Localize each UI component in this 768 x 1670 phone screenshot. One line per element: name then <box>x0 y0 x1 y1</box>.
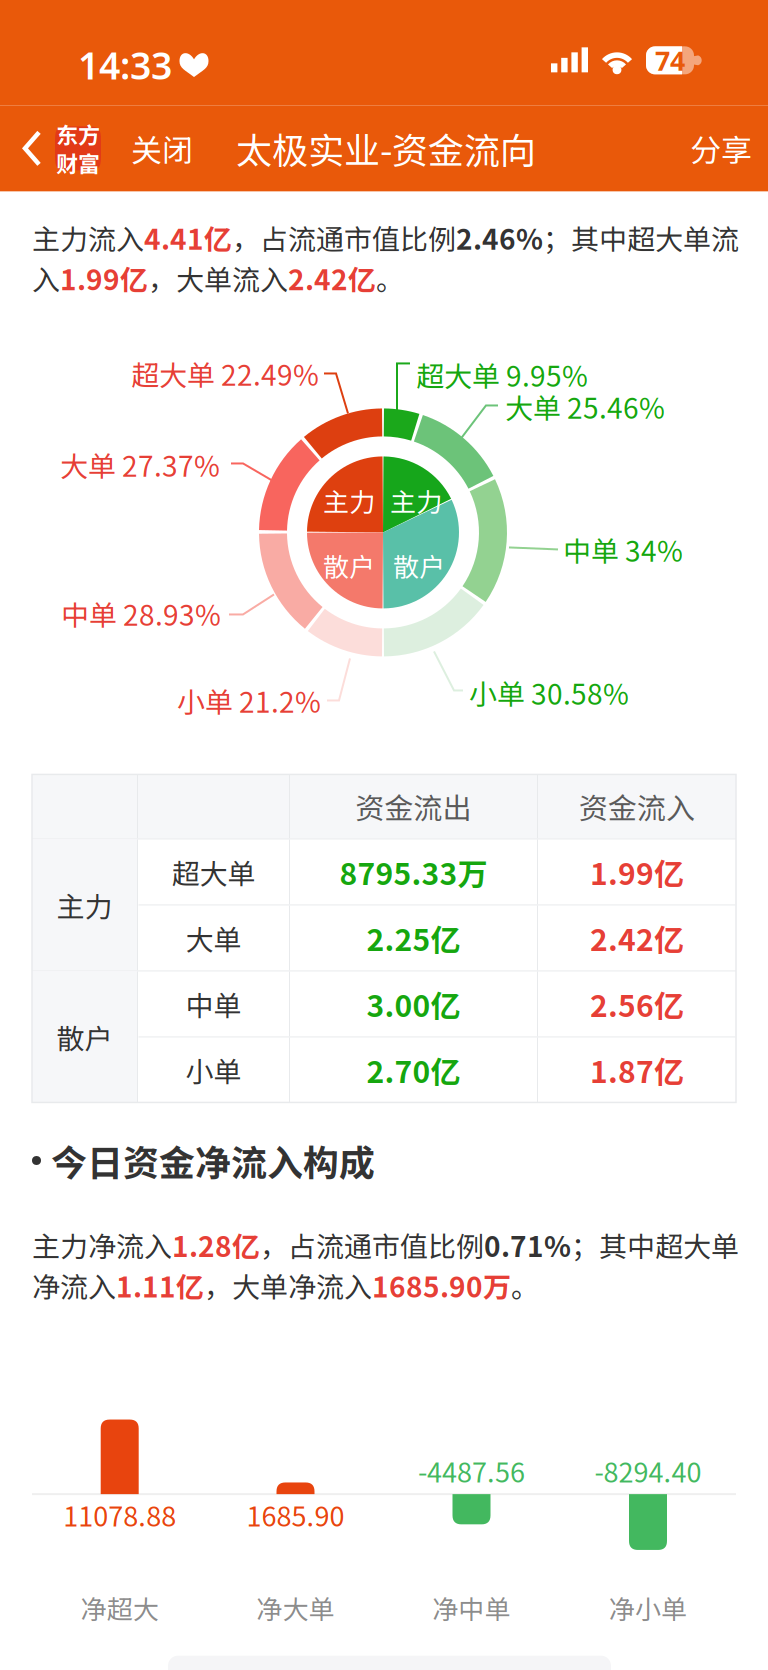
staticText: 分享 <box>690 126 752 171</box>
staticText: 2.25亿 <box>366 916 460 960</box>
staticText: 小单 21.2% <box>177 680 321 721</box>
button[interactable]: 关闭 <box>107 118 215 179</box>
staticText: 74 <box>655 43 685 78</box>
staticText: 2.46% <box>456 217 543 258</box>
staticText: 入 <box>32 258 60 298</box>
staticText: ，大单流入 <box>148 258 288 298</box>
staticText: 超大单 22.49% <box>131 353 319 394</box>
staticText: 0.71% <box>484 1225 571 1265</box>
staticText: 3.00亿 <box>366 982 460 1026</box>
staticText: 1.11亿 <box>116 1265 204 1306</box>
staticText: ，大单净流入 <box>204 1265 372 1306</box>
staticText: -4487.56 <box>418 1451 525 1490</box>
staticText: 。 <box>376 258 404 298</box>
staticText: ；其中超大单 <box>571 1225 739 1265</box>
staticText: 中单 34% <box>563 529 683 570</box>
staticText: 1.99亿 <box>60 258 148 298</box>
staticText: 1685.90万 <box>372 1265 511 1306</box>
staticText: 净小单 <box>609 1589 687 1626</box>
staticText: 太极实业-资金流向 <box>236 122 536 174</box>
staticText: 1685.90 <box>246 1495 344 1534</box>
staticText: 中单 <box>185 984 241 1024</box>
button[interactable]: 分享 <box>668 118 768 179</box>
staticText: 资金流入 <box>579 785 695 827</box>
staticText: 主力 <box>323 482 375 519</box>
staticText: 2.42亿 <box>288 258 376 298</box>
staticText: 1.87亿 <box>590 1048 684 1092</box>
staticText: ，占流通市值比例 <box>232 217 456 258</box>
staticText: ，占流通市值比例 <box>260 1225 484 1265</box>
staticText: 主力流入 <box>32 217 144 258</box>
staticText: 净超大 <box>81 1589 159 1626</box>
staticText: 大单 <box>185 918 241 958</box>
staticText: 2.56亿 <box>590 982 684 1026</box>
staticText: -8294.40 <box>594 1451 701 1490</box>
staticText: 散户 <box>323 547 375 584</box>
staticText: 净中单 <box>432 1589 510 1626</box>
staticText: 中单 28.93% <box>61 593 221 634</box>
staticText: 大单 27.37% <box>60 444 220 485</box>
staticText: 14:33 <box>78 40 172 90</box>
staticText: 4.41亿 <box>144 217 232 258</box>
staticText: 主力净流入 <box>32 1225 172 1265</box>
staticText: 8795.33万 <box>339 850 487 894</box>
staticText: 散户 <box>56 1017 112 1057</box>
staticText: 小单 30.58% <box>469 672 629 713</box>
staticText: 小单 <box>185 1050 241 1090</box>
staticText: 东方 <box>56 118 100 150</box>
staticText: 1.99亿 <box>590 850 684 894</box>
staticText: ；其中超大单流 <box>543 217 739 258</box>
staticText: 1.28亿 <box>172 1225 260 1265</box>
staticText: 关闭 <box>131 126 193 171</box>
staticText: 2.42亿 <box>590 916 684 960</box>
staticText: 主力 <box>56 885 112 925</box>
staticText: 财富 <box>56 147 100 179</box>
button[interactable]: 返回 <box>0 126 107 170</box>
staticText: 超大单 <box>171 852 255 892</box>
staticText: 2.70亿 <box>366 1048 460 1092</box>
staticText: 超大单 9.95% <box>416 354 588 395</box>
staticText: 资金流出 <box>355 785 471 827</box>
staticText: 净流入 <box>32 1265 116 1306</box>
staticText: 11078.88 <box>63 1495 176 1534</box>
staticText: 净大单 <box>256 1589 334 1626</box>
staticText: 今日资金净流入构成 <box>51 1134 375 1186</box>
staticText: 散户 <box>393 547 445 584</box>
staticText: 主力 <box>390 482 442 519</box>
staticText: 大单 25.46% <box>505 386 665 427</box>
staticText: 。 <box>511 1265 539 1306</box>
